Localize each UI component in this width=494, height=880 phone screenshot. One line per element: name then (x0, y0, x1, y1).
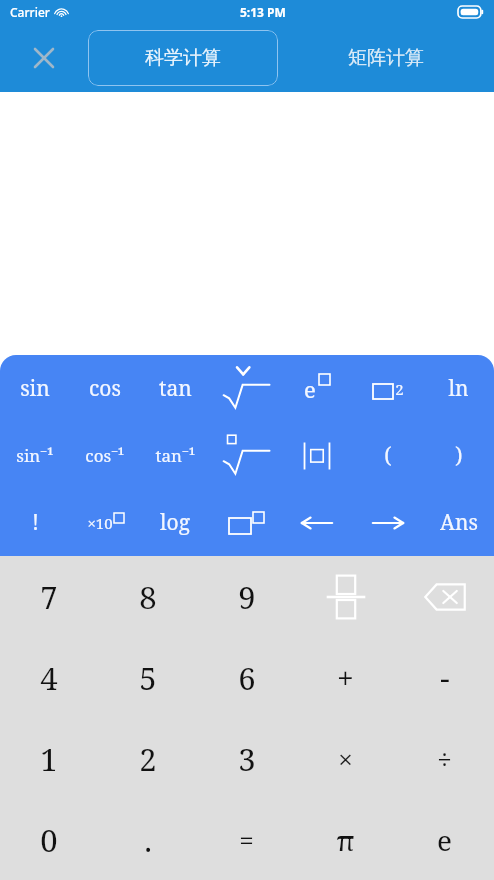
button[interactable]: log (140, 489, 210, 556)
staticText: . (144, 819, 152, 861)
button[interactable]: 2 (98, 718, 197, 799)
button[interactable]: × (296, 718, 395, 799)
button[interactable]: 0 (0, 799, 98, 880)
button[interactable]: Square root (210, 355, 281, 422)
button[interactable]: Absolute value (281, 422, 352, 489)
button[interactable]: Times ten to the power (70, 489, 140, 556)
staticText: ln (448, 374, 469, 403)
button[interactable]: 9 (197, 556, 296, 637)
staticText: Carrier (10, 4, 50, 20)
staticText: tan (159, 374, 192, 403)
button[interactable]: ÷ (395, 718, 494, 799)
staticText: - (440, 657, 450, 698)
staticText: log (160, 508, 190, 537)
button[interactable]: 科学计算 (88, 30, 278, 86)
button[interactable]: Fraction (296, 556, 395, 637)
button[interactable]: π (296, 799, 395, 880)
staticText: 9 (238, 576, 256, 618)
button[interactable]: Nth root (210, 422, 281, 489)
button[interactable]: ) (423, 422, 494, 489)
button[interactable]: sin⁻¹ (0, 422, 70, 489)
button[interactable]: 3 (197, 718, 296, 799)
button[interactable]: . (98, 799, 197, 880)
button[interactable]: Move left (281, 489, 352, 556)
staticText: 8 (139, 576, 157, 618)
staticText: 5 (139, 657, 157, 699)
staticText: 2 (395, 379, 404, 399)
staticText: e (304, 374, 316, 404)
staticText: π (336, 821, 355, 859)
staticText: ×10 (87, 513, 113, 533)
button[interactable]: ( (352, 422, 423, 489)
button[interactable]: e (395, 799, 494, 880)
staticText: cos (89, 374, 121, 403)
staticText: × (338, 741, 353, 776)
staticText: 5:13 PM (240, 4, 286, 20)
button[interactable]: cos (70, 355, 140, 422)
button[interactable]: 矩阵计算 (278, 24, 494, 92)
staticText: 0 (40, 819, 58, 861)
button[interactable]: Backspace (395, 556, 494, 637)
staticText: 7 (40, 576, 58, 618)
button[interactable]: e to the power (281, 355, 352, 422)
button[interactable]: Power (210, 489, 281, 556)
staticText: ( (384, 441, 392, 470)
button[interactable]: sin (0, 355, 70, 422)
staticText: 科学计算 (145, 46, 221, 70)
button[interactable]: 4 (0, 637, 98, 718)
staticText: e (437, 821, 452, 859)
button[interactable]: tan (140, 355, 210, 422)
button[interactable]: Square (352, 355, 423, 422)
staticText: ÷ (437, 741, 452, 776)
button[interactable]: ! (0, 489, 70, 556)
button[interactable]: 1 (0, 718, 98, 799)
button[interactable]: cos⁻¹ (70, 422, 140, 489)
button[interactable]: tan⁻¹ (140, 422, 210, 489)
staticText: 矩阵计算 (348, 46, 424, 70)
staticText: 3 (238, 738, 256, 780)
staticText: 2 (139, 738, 157, 780)
staticText: 1 (40, 738, 58, 780)
button[interactable]: 6 (197, 637, 296, 718)
button[interactable]: Ans (423, 489, 494, 556)
staticText: cos⁻¹ (85, 444, 125, 467)
staticText: 4 (40, 657, 58, 699)
staticText: ) (455, 441, 463, 470)
staticText: sin⁻¹ (16, 444, 54, 467)
staticText: 6 (238, 657, 256, 699)
staticText: tan⁻¹ (155, 444, 196, 467)
button[interactable]: ln (423, 355, 494, 422)
staticText: + (337, 657, 354, 698)
button[interactable]: Close (0, 24, 88, 92)
staticText: Ans (440, 508, 478, 537)
button[interactable]: + (296, 637, 395, 718)
button[interactable]: 7 (0, 556, 98, 637)
staticText: sin (20, 374, 50, 403)
button[interactable]: 8 (98, 556, 197, 637)
button[interactable]: - (395, 637, 494, 718)
staticText: = (239, 822, 254, 857)
staticText: ! (32, 508, 39, 537)
button[interactable]: 5 (98, 637, 197, 718)
button[interactable]: Move right (352, 489, 423, 556)
button[interactable]: = (197, 799, 296, 880)
